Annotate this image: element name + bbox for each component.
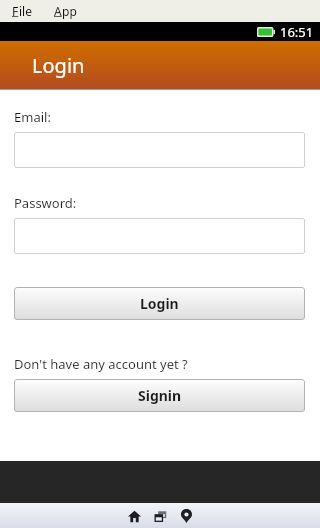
staticText: A bbox=[54, 3, 62, 19]
staticText: Email: bbox=[14, 108, 51, 126]
staticText: F bbox=[12, 3, 19, 19]
button[interactable]: Location bbox=[174, 504, 198, 528]
button[interactable]: Recent apps bbox=[148, 504, 172, 528]
button[interactable]: F bbox=[8, 1, 36, 21]
staticText: 16:51 bbox=[280, 23, 314, 41]
button[interactable]: Login bbox=[14, 287, 305, 320]
staticText: ile bbox=[19, 3, 32, 19]
staticText: Don't have any account yet ? bbox=[14, 355, 188, 373]
staticText: Login bbox=[32, 52, 85, 79]
button[interactable] bbox=[14, 218, 305, 254]
staticText: pp bbox=[62, 3, 77, 19]
staticText: Password: bbox=[14, 194, 77, 212]
button[interactable] bbox=[14, 132, 305, 168]
button[interactable]: Signin bbox=[14, 379, 305, 412]
staticText: Login bbox=[140, 294, 179, 313]
button[interactable]: A bbox=[50, 1, 81, 21]
staticText: Signin bbox=[138, 386, 182, 405]
button[interactable]: Home bbox=[122, 504, 146, 528]
